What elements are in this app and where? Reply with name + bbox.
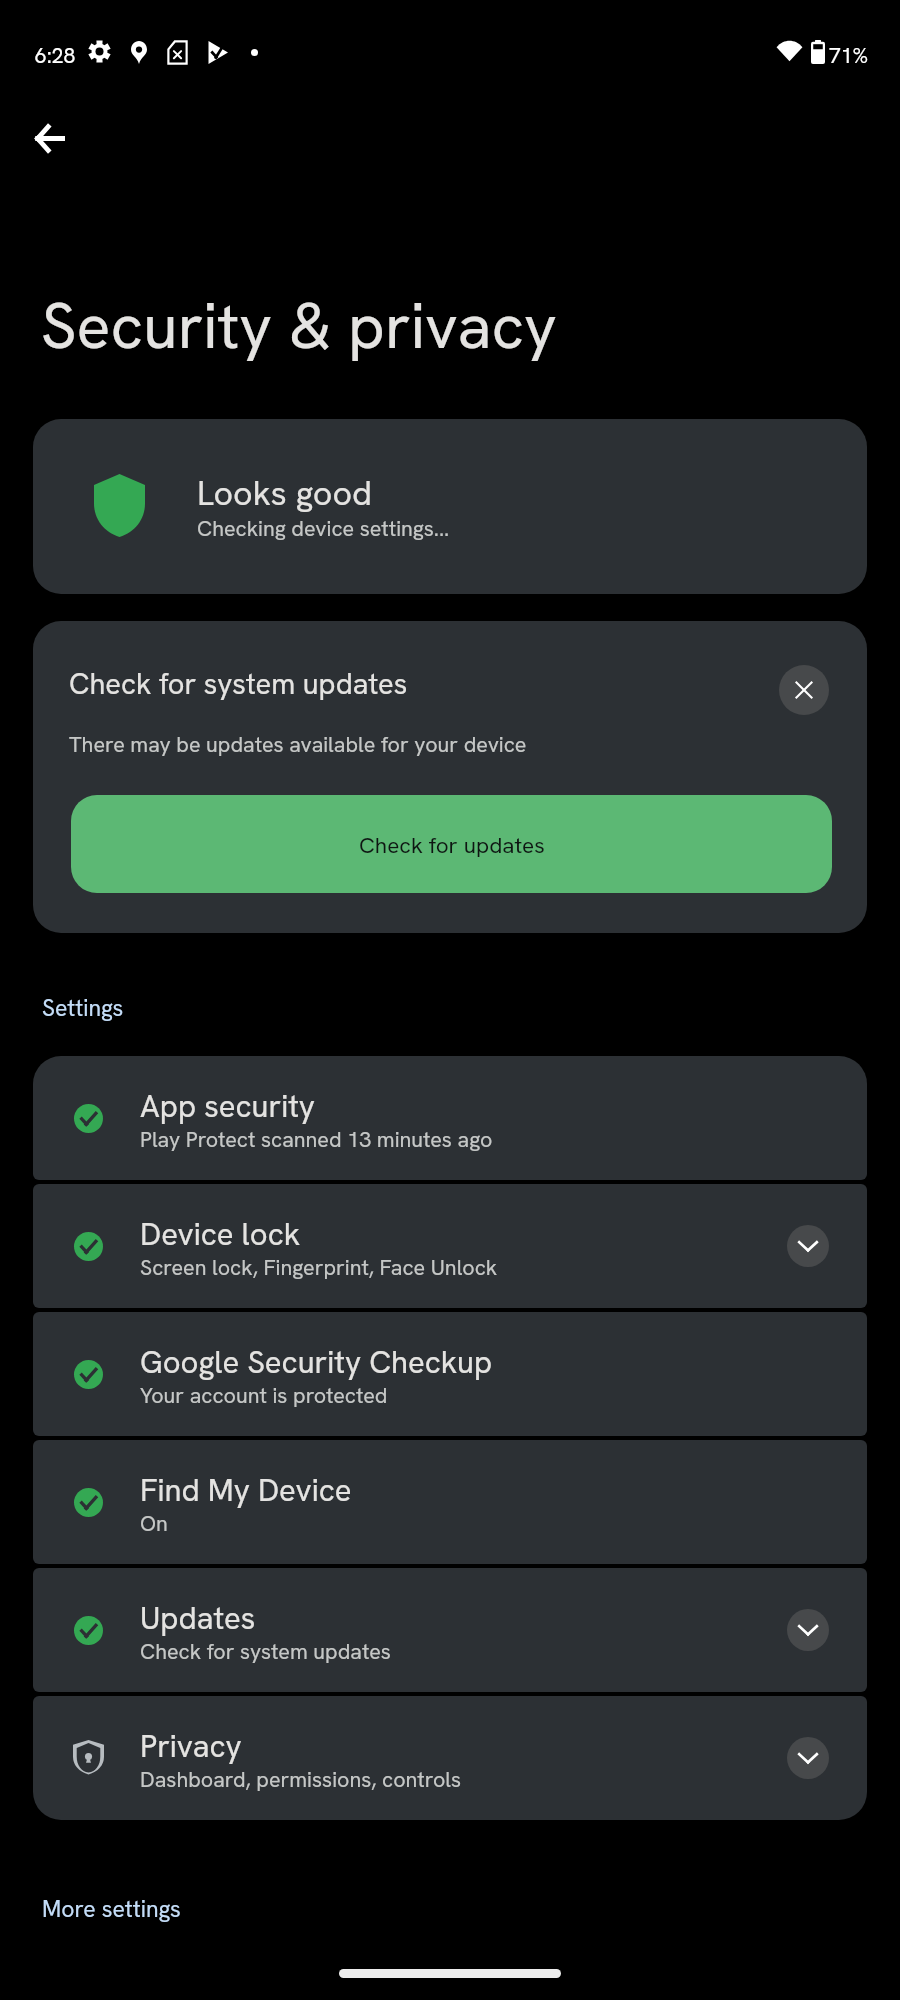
button[interactable]: Check for updates: [71, 795, 832, 893]
staticText: Play Protect scanned 13 minutes ago: [140, 1125, 493, 1153]
button[interactable]: Expand Privacy: [787, 1737, 829, 1779]
staticText: Check for updates: [359, 830, 545, 859]
button[interactable]: App security: [33, 1056, 867, 1180]
staticText: Dashboard, permissions, controls: [140, 1765, 462, 1793]
button[interactable]: More settings: [42, 1894, 181, 1924]
button[interactable]: Expand Updates: [787, 1609, 829, 1651]
button[interactable]: Privacy: [33, 1696, 867, 1820]
button[interactable]: Expand Device lock: [787, 1225, 829, 1267]
staticText: Settings: [42, 993, 124, 1023]
staticText: Device lock: [140, 1214, 301, 1254]
staticText: 6:28: [35, 42, 76, 69]
staticText: App security: [140, 1086, 316, 1126]
staticText: 71%: [829, 42, 869, 69]
staticText: Looks good: [197, 471, 372, 515]
staticText: On: [140, 1509, 168, 1537]
button[interactable]: Back: [22, 110, 78, 166]
staticText: Updates: [140, 1598, 256, 1638]
staticText: Find My Device: [140, 1470, 352, 1510]
staticText: Check for system updates: [69, 665, 408, 703]
button[interactable]: Find My Device: [33, 1440, 867, 1564]
staticText: Google Security Checkup: [140, 1342, 493, 1382]
button[interactable]: Looks good: [33, 419, 867, 594]
staticText: Checking device settings...: [197, 514, 450, 542]
button[interactable]: Device lock: [33, 1184, 867, 1308]
staticText: Check for system updates: [140, 1637, 391, 1665]
button[interactable]: Dismiss: [779, 665, 829, 715]
staticText: Screen lock, Fingerprint, Face Unlock: [140, 1253, 498, 1281]
button[interactable]: Google Security Checkup: [33, 1312, 867, 1436]
staticText: Privacy: [140, 1726, 242, 1766]
button[interactable]: Updates: [33, 1568, 867, 1692]
staticText: Security & privacy: [41, 285, 557, 367]
staticText: There may be updates available for your …: [69, 730, 527, 758]
staticText: Your account is protected: [140, 1381, 388, 1409]
